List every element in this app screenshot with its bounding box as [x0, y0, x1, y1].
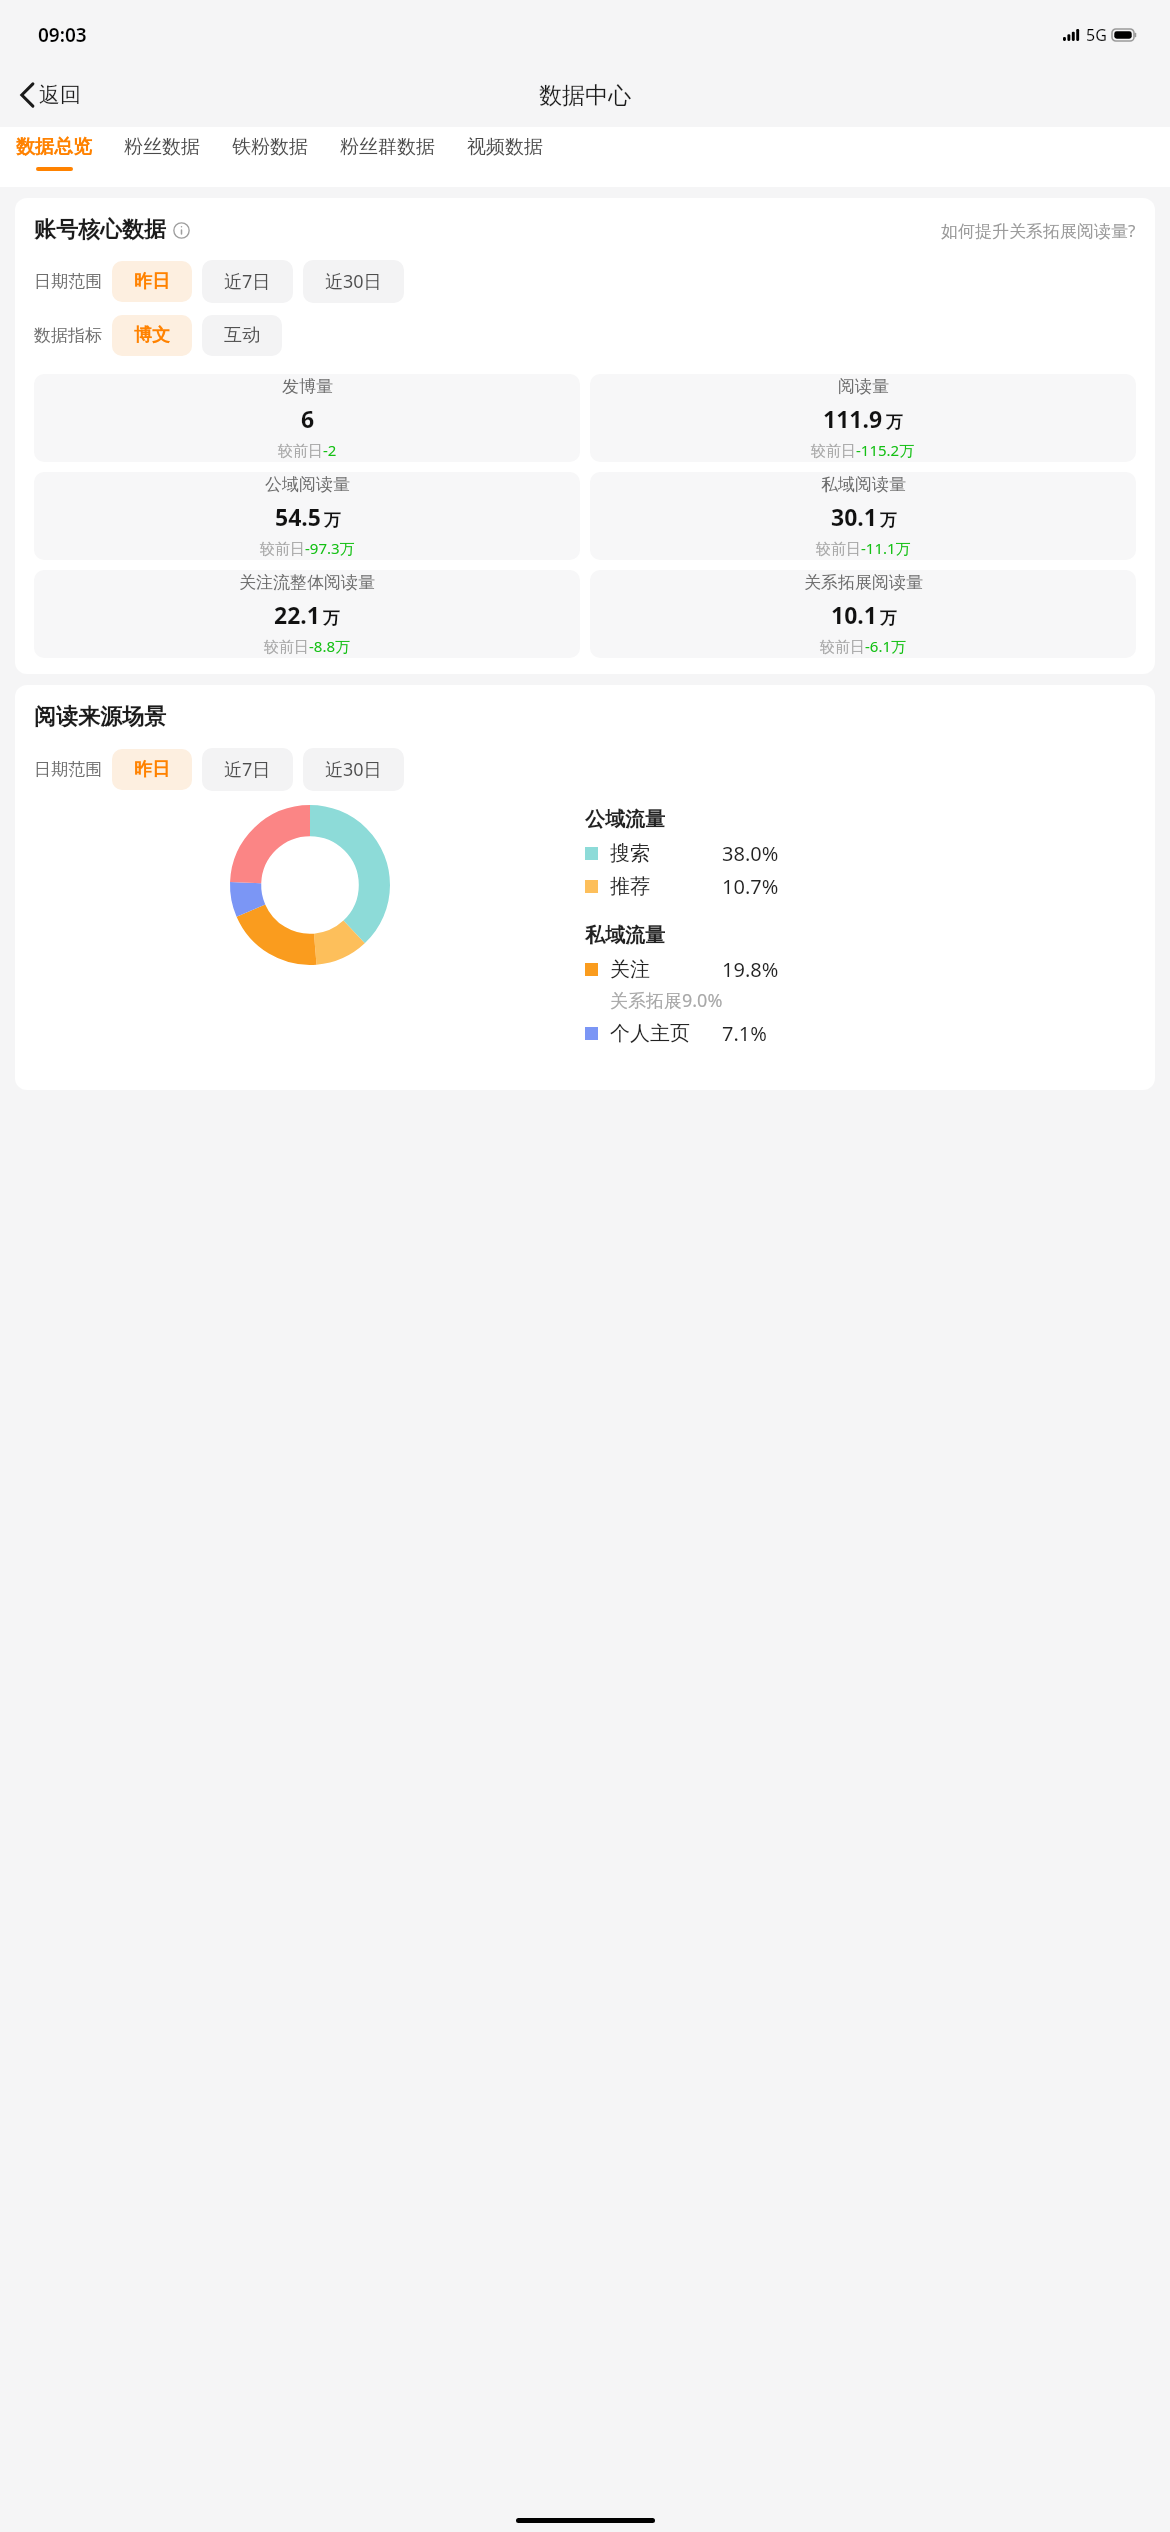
staticText: 搜索 — [610, 841, 722, 866]
staticText: 视频数据 — [467, 135, 543, 159]
staticText: 10.7% — [722, 873, 779, 900]
button[interactable]: 推荐 — [585, 870, 1136, 903]
staticText: 较前日-2 — [278, 440, 337, 460]
button[interactable]: 私域阅读量 — [590, 472, 1136, 560]
button[interactable]: 说明 — [173, 222, 190, 239]
button[interactable]: 发博量 — [34, 374, 580, 462]
button[interactable]: 关注 — [585, 953, 1136, 986]
button[interactable]: 视频数据 — [451, 127, 559, 187]
staticText: 近7日 — [224, 269, 271, 294]
staticText: 较前日-8.8万 — [264, 636, 351, 656]
staticText: 19.8% — [722, 956, 779, 983]
staticText: 关系拓展9.0% — [610, 988, 723, 1013]
staticText: 较前日-11.1万 — [816, 538, 911, 558]
button[interactable]: 如何提升关系拓展阅读量? — [941, 219, 1136, 242]
staticText: 发博量 — [282, 376, 333, 397]
staticText: 返回 — [39, 82, 81, 108]
staticText: 5G — [1086, 24, 1107, 46]
staticText: 万 — [886, 412, 903, 433]
staticText: 个人主页 — [610, 1021, 722, 1046]
staticText: 111.9 — [823, 403, 883, 434]
staticText: 粉丝数据 — [124, 135, 200, 159]
staticText: 互动 — [224, 324, 260, 347]
staticText: 30.1 — [831, 501, 877, 532]
button[interactable]: 数据总览 — [0, 127, 108, 187]
button[interactable]: 铁粉数据 — [216, 127, 324, 187]
staticText: 09:03 — [38, 22, 87, 48]
staticText: 万 — [324, 510, 341, 531]
button[interactable]: 近30日 — [303, 260, 404, 303]
button[interactable]: 近7日 — [202, 260, 293, 303]
staticText: 万 — [880, 510, 897, 531]
staticText: 关系拓展阅读量 — [804, 572, 923, 593]
staticText: 数据中心 — [539, 81, 631, 110]
button[interactable]: 博文 — [112, 315, 192, 356]
staticText: 粉丝群数据 — [340, 135, 435, 159]
button[interactable]: 搜索 — [585, 837, 1136, 870]
button[interactable]: 互动 — [202, 315, 282, 356]
staticText: 54.5 — [275, 501, 321, 532]
staticText: 较前日-97.3万 — [260, 538, 355, 558]
button[interactable]: 近30日 — [303, 748, 404, 791]
button[interactable]: 关系拓展阅读量 — [590, 570, 1136, 658]
staticText: 账号核心数据 — [34, 216, 166, 244]
staticText: 7.1% — [722, 1020, 767, 1047]
staticText: 38.0% — [722, 840, 779, 867]
staticText: 公域阅读量 — [265, 474, 350, 495]
staticText: 博文 — [134, 324, 170, 347]
staticText: 万 — [880, 608, 897, 629]
button[interactable]: 公域阅读量 — [34, 472, 580, 560]
button[interactable]: 阅读量 — [590, 374, 1136, 462]
staticText: 近30日 — [325, 757, 382, 782]
button[interactable]: 昨日 — [112, 261, 192, 302]
staticText: 10.1 — [831, 599, 877, 630]
staticText: 数据总览 — [16, 135, 92, 159]
staticText: 关注流整体阅读量 — [239, 572, 375, 593]
button[interactable]: 个人主页 — [585, 1017, 1136, 1050]
staticText: 日期范围 — [34, 759, 102, 780]
button[interactable]: 近7日 — [202, 748, 293, 791]
staticText: 数据指标 — [34, 325, 102, 346]
staticText: 推荐 — [610, 874, 722, 899]
staticText: 昨日 — [134, 758, 170, 781]
staticText: 万 — [323, 608, 340, 629]
staticText: 较前日-115.2万 — [811, 440, 915, 460]
staticText: 近7日 — [224, 757, 271, 782]
staticText: 关注 — [610, 957, 722, 982]
button[interactable]: 粉丝群数据 — [324, 127, 451, 187]
staticText: 阅读来源场景 — [34, 703, 166, 731]
staticText: 私域流量 — [585, 923, 665, 948]
staticText: 公域流量 — [585, 807, 665, 832]
staticText: 铁粉数据 — [232, 135, 308, 159]
staticText: 阅读量 — [838, 376, 889, 397]
staticText: 昨日 — [134, 270, 170, 293]
staticText: 日期范围 — [34, 271, 102, 292]
button[interactable]: 昨日 — [112, 749, 192, 790]
button[interactable]: 返回 — [0, 63, 95, 127]
button[interactable]: 粉丝数据 — [108, 127, 216, 187]
staticText: 22.1 — [274, 599, 320, 630]
staticText: 6 — [301, 403, 315, 434]
staticText: 私域阅读量 — [821, 474, 906, 495]
staticText: 较前日-6.1万 — [820, 636, 907, 656]
staticText: 近30日 — [325, 269, 382, 294]
button[interactable]: 关注流整体阅读量 — [34, 570, 580, 658]
